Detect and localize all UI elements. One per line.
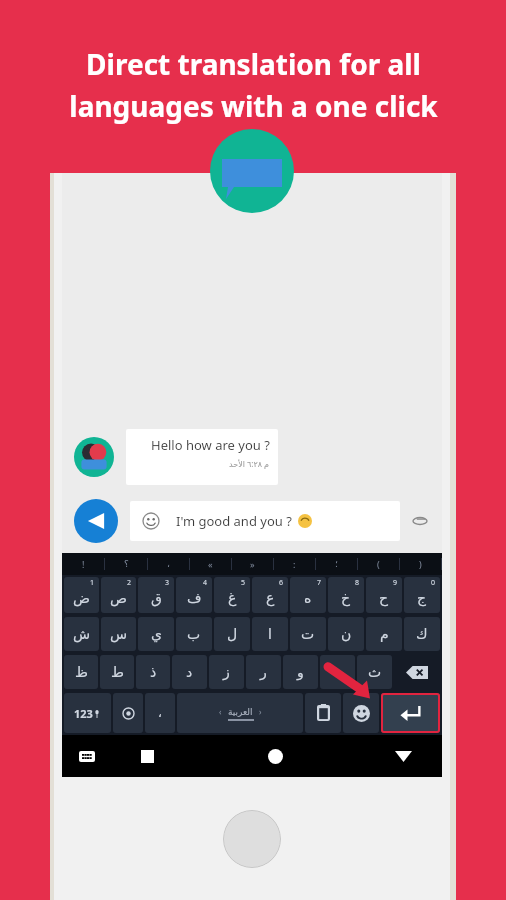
staticText: م [380,626,389,642]
staticText: خ [341,590,351,606]
staticText: › [259,706,262,717]
staticText: ر [260,664,267,680]
button[interactable]: Language settings [113,693,143,733]
button[interactable]: ن [328,617,364,651]
staticText: ! [82,558,85,570]
button[interactable]: س [101,617,136,651]
button[interactable]: 9 [366,577,402,613]
button[interactable]: Home [262,743,288,769]
button[interactable]: I'm good and you ? [130,501,400,541]
staticText: ع [266,590,275,606]
button[interactable]: Back [390,743,416,769]
button[interactable]: 3 [138,577,174,613]
staticText: ظ [75,664,88,680]
button[interactable]: 123 [64,693,111,733]
button[interactable]: ط [100,655,134,689]
button[interactable]: « [190,553,231,575]
button[interactable]: 7 [290,577,326,613]
staticText: I'm good and you ? [176,512,292,530]
staticText: 6 [279,578,284,588]
button[interactable]: ظ [64,655,98,689]
button[interactable]: د [172,655,207,689]
staticText: د [186,664,193,680]
button[interactable]: Keyboard [74,743,100,769]
button[interactable]: ، [148,553,189,575]
button[interactable]: ا [252,617,288,651]
staticText: 5 [241,578,246,588]
staticText: ، [158,706,162,720]
button[interactable]: 0 [404,577,440,613]
staticText: ط [111,664,124,680]
staticText: م ٦:٢٨ الأحد [229,458,270,469]
button[interactable]: ك [404,617,440,651]
staticText: 2 [127,578,132,588]
button[interactable]: Attach [408,509,432,533]
button[interactable]: 8 [328,577,364,613]
button[interactable]: ؛ [316,553,357,575]
button[interactable]: ؟ [105,553,147,575]
button[interactable]: 4 [176,577,212,613]
staticText: » [250,558,255,570]
button[interactable]: ( [358,553,399,575]
button[interactable]: Clipboard [305,693,341,733]
button[interactable]: » [232,553,273,575]
button[interactable]: ‹ [177,693,303,733]
button[interactable]: Backspace [394,655,440,689]
staticText: ح [379,590,389,606]
button[interactable]: م [366,617,402,651]
staticText: العربية [228,707,253,717]
button[interactable]: ش [64,617,99,651]
staticText: languages with a one click [69,87,438,125]
button[interactable]: : [274,553,315,575]
button[interactable]: ر [246,655,281,689]
button[interactable]: و [283,655,318,689]
staticText: « [208,558,213,570]
button[interactable]: 6 [252,577,288,613]
staticText: ص [110,590,127,606]
button[interactable]: ، [145,693,175,733]
button[interactable]: Send [74,499,118,543]
staticText: ه [304,590,312,606]
button[interactable]: Home [223,810,281,868]
staticText: ا [268,626,272,642]
staticText: و [297,664,304,680]
staticText: 7 [317,578,322,588]
staticText: ف [187,590,202,606]
button[interactable]: Emoji [343,693,379,733]
staticText: Direct translation for all [86,45,421,83]
button[interactable]: ي [138,617,174,651]
button[interactable]: ذ [136,655,170,689]
button[interactable]: ت [290,617,326,651]
staticText: ة [334,664,342,680]
button[interactable]: Enter [381,693,440,733]
staticText: 0 [431,578,436,588]
staticText: ي [151,626,162,642]
staticText: 123 [74,706,93,721]
staticText: 9 [393,578,398,588]
button[interactable]: 2 [101,577,136,613]
staticText: 8 [355,578,360,588]
staticText: ، [167,559,170,569]
staticText: 4 [203,578,208,588]
button[interactable]: ة [320,655,355,689]
button[interactable]: Hello how are you ? [126,429,278,485]
staticText: ؛ [335,559,338,569]
staticText: ب [187,626,201,642]
staticText: ل [227,626,238,642]
button[interactable]: 5 [214,577,250,613]
button[interactable]: ل [214,617,250,651]
staticText: Hello how are you ? [151,436,270,454]
button[interactable]: ز [209,655,244,689]
button[interactable]: Recents [134,743,160,769]
button[interactable]: 1 [64,577,99,613]
staticText: ) [419,558,422,570]
button[interactable]: ) [400,553,441,575]
button[interactable]: ! [62,553,104,575]
staticText: ق [151,590,162,606]
staticText: س [110,626,128,642]
button[interactable]: ث [357,655,392,689]
staticText: ؟ [124,559,129,569]
staticText: ك [416,626,428,642]
staticText: ج [417,590,427,606]
button[interactable]: ب [176,617,212,651]
